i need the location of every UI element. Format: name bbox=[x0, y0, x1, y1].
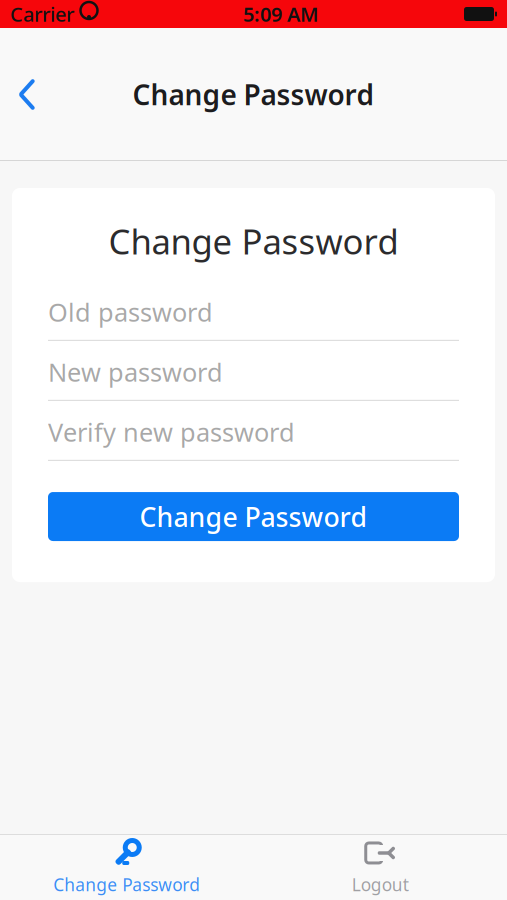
staticText: Change Password bbox=[53, 873, 200, 896]
staticText: Change Password bbox=[132, 76, 374, 113]
staticText: Carrier bbox=[10, 1, 74, 27]
staticText: New password bbox=[48, 355, 223, 389]
staticText: Change Password bbox=[108, 218, 398, 264]
staticText: 5:09 AM bbox=[243, 1, 319, 27]
button[interactable]: Change Password bbox=[48, 492, 459, 541]
button[interactable]: Logout bbox=[253, 835, 507, 899]
staticText: Verify new password bbox=[48, 415, 295, 449]
button[interactable]: Back bbox=[0, 64, 54, 124]
staticText: Old password bbox=[48, 295, 213, 329]
staticText: Change Password bbox=[139, 499, 367, 534]
button[interactable]: Change Password bbox=[0, 835, 253, 899]
staticText: Logout bbox=[352, 873, 409, 896]
